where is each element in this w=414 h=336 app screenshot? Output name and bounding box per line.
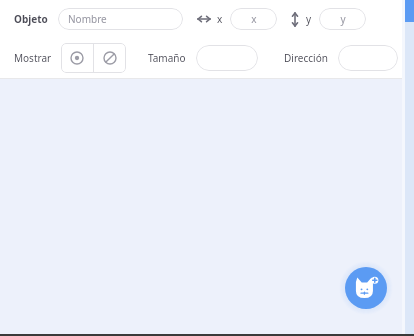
staticText: Mostrar bbox=[14, 51, 52, 65]
button[interactable]: Ancho x bbox=[230, 8, 277, 30]
button[interactable]: Ocultar bbox=[94, 43, 126, 73]
staticText: Objeto bbox=[14, 12, 48, 26]
button[interactable]: Añadir objeto bbox=[345, 267, 387, 309]
staticText: x bbox=[251, 12, 257, 26]
staticText: Tamaño bbox=[148, 51, 186, 65]
staticText: y bbox=[306, 12, 312, 26]
staticText: Nombre bbox=[68, 12, 107, 26]
button[interactable]: Alto y bbox=[319, 8, 366, 30]
staticText: y bbox=[340, 12, 346, 26]
staticText: x bbox=[217, 12, 223, 26]
button[interactable]: Tamaño bbox=[196, 45, 258, 71]
button[interactable]: Dirección bbox=[338, 45, 398, 71]
button[interactable]: Mostrar visible bbox=[61, 43, 93, 73]
button[interactable]: Nombre del objeto bbox=[58, 8, 183, 30]
staticText: Dirección bbox=[284, 51, 328, 65]
